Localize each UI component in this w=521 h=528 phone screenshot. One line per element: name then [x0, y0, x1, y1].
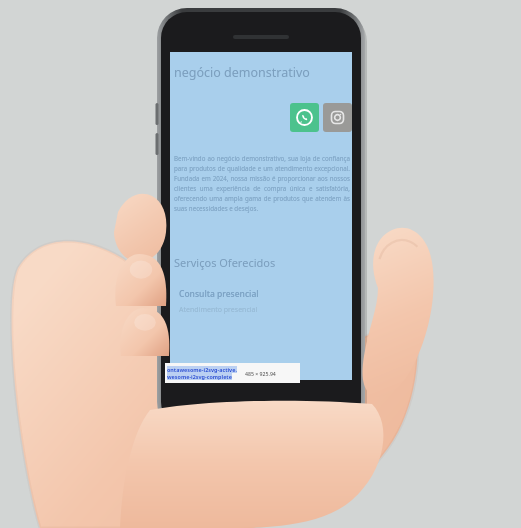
staticText: ontawesome-i2svg-active.: [167, 366, 237, 373]
staticText: 485 × 925.94: [245, 370, 276, 377]
button[interactable]: WhatsApp: [290, 103, 319, 132]
staticText: negócio demonstrativo: [174, 64, 310, 81]
staticText: Bem-vindo ao negócio demonstrativo, sua …: [174, 154, 350, 213]
staticText: wesome-i2svg-complete: [167, 373, 232, 380]
staticText: Consulta presencial: [179, 288, 259, 300]
button[interactable]: Instagram: [323, 103, 352, 132]
staticText: Atendimento presencial: [179, 305, 258, 315]
staticText: Serviços Oferecidos: [174, 255, 276, 270]
